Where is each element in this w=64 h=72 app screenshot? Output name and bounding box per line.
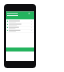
- button[interactable]: List item 1: [6, 20, 34, 23]
- button[interactable]: List item 4: [6, 29, 34, 32]
- button[interactable]: App bar: [6, 12, 34, 20]
- button[interactable]: Bottom navigation: [6, 48, 34, 52]
- button[interactable]: More options: [29, 12, 31, 14]
- button[interactable]: List item 3: [6, 26, 34, 29]
- button[interactable]: List item 2: [6, 23, 34, 26]
